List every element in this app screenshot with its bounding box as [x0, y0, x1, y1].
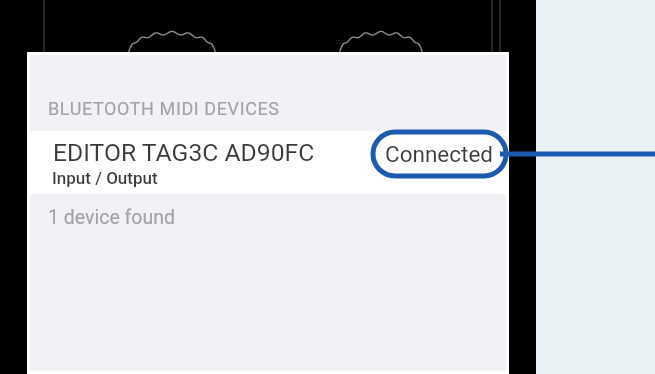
- staticText: Input / Output: [52, 168, 158, 188]
- staticText: 1 device found: [48, 206, 175, 229]
- button[interactable]: [30, 131, 506, 194]
- staticText: Connected: [385, 141, 494, 167]
- staticText: EDITOR TAG3C AD90FC: [53, 138, 315, 167]
- staticText: BLUETOOTH MIDI DEVICES: [48, 98, 280, 119]
